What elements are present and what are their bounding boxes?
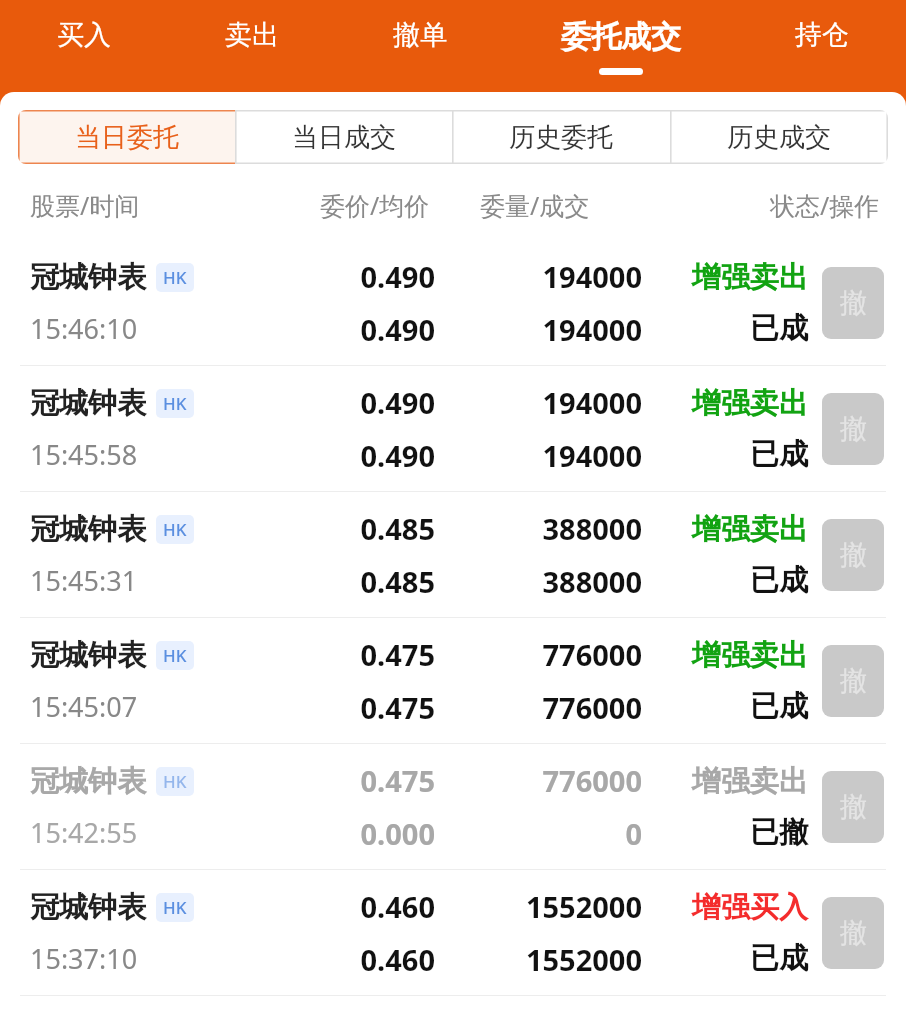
staticText: 增强卖出 [692,511,808,548]
button[interactable]: 冠城钟表 [0,492,906,617]
staticText: HK [163,266,187,289]
staticText: 194000 [542,383,642,422]
staticText: 776000 [542,761,642,800]
staticText: 0.475 [360,635,435,674]
staticText: 状态/操作 [770,188,880,222]
staticText: 冠城钟表 [30,259,146,296]
button[interactable]: 冠城钟表 [0,744,906,869]
staticText: 15:46:10 [30,310,138,347]
button[interactable]: 冠城钟表 [0,240,906,365]
staticText: 388000 [542,509,642,548]
staticText: 194000 [542,257,642,296]
staticText: 当日委托 [75,121,179,154]
button[interactable]: 撤单 [822,393,884,465]
staticText: 增强卖出 [692,763,808,800]
button[interactable]: 买入 [47,0,121,64]
staticText: 194000 [542,310,642,349]
staticText: 撤 [840,538,867,572]
staticText: 股票/时间 [30,188,140,222]
staticText: 已成 [750,436,808,473]
staticText: 冠城钟表 [30,385,146,422]
staticText: 0.000 [360,814,435,853]
staticText: 388000 [542,562,642,601]
staticText: 已成 [750,562,808,599]
staticText: 冠城钟表 [30,763,146,800]
staticText: 已撤 [750,814,808,851]
staticText: 委价/均价 [320,188,430,222]
button[interactable]: 撤单 [822,645,884,717]
staticText: 1552000 [525,887,642,926]
staticText: 776000 [542,635,642,674]
staticText: HK [163,896,187,919]
button[interactable]: 冠城钟表 [0,366,906,491]
button[interactable]: 历史成交 [670,110,888,164]
staticText: 冠城钟表 [30,889,146,926]
staticText: 776000 [542,688,642,727]
staticText: 194000 [542,436,642,475]
staticText: 撤 [840,916,867,950]
staticText: 0.490 [360,257,435,296]
staticText: 买入 [57,18,111,52]
staticText: HK [163,770,187,793]
button[interactable]: 撤单 [822,897,884,969]
staticText: 委托成交 [561,18,681,56]
staticText: 增强卖出 [692,637,808,674]
staticText: 当日成交 [292,121,396,154]
staticText: 增强卖出 [692,259,808,296]
staticText: 1552000 [525,940,642,979]
staticText: HK [163,518,187,541]
staticText: 增强买入 [692,889,808,926]
staticText: 持仓 [795,18,849,52]
staticText: 0.475 [360,761,435,800]
staticText: 0.490 [360,310,435,349]
staticText: 委量/成交 [480,188,590,222]
staticText: 历史成交 [727,121,831,154]
button[interactable]: 撤单 [822,771,884,843]
staticText: 15:37:10 [30,940,138,977]
staticText: 15:45:58 [30,436,138,473]
button[interactable]: 当日成交 [235,110,452,164]
staticText: 15:45:31 [30,562,138,599]
staticText: 冠城钟表 [30,511,146,548]
staticText: 15:42:55 [30,814,138,851]
staticText: 撤单 [393,18,447,52]
staticText: 0 [625,814,642,853]
staticText: 已成 [750,310,808,347]
button[interactable]: 历史委托 [452,110,670,164]
staticText: 已成 [750,688,808,725]
staticText: HK [163,392,187,415]
staticText: 冠城钟表 [30,637,146,674]
staticText: 0.475 [360,688,435,727]
staticText: 0.485 [360,509,435,548]
staticText: 撤 [840,664,867,698]
staticText: 0.460 [360,940,435,979]
button[interactable]: 撤单 [822,267,884,339]
button[interactable]: 当日委托 [18,110,235,164]
staticText: 0.490 [360,383,435,422]
staticText: 撤 [840,790,867,824]
staticText: HK [163,644,187,667]
button[interactable]: 撤单 [822,519,884,591]
staticText: 历史委托 [509,121,613,154]
staticText: 撤 [840,412,867,446]
staticText: 0.485 [360,562,435,601]
staticText: 0.490 [360,436,435,475]
staticText: 已成 [750,940,808,977]
staticText: 增强卖出 [692,385,808,422]
button[interactable]: 持仓 [785,0,859,64]
staticText: 0.460 [360,887,435,926]
staticText: 卖出 [225,18,279,52]
button[interactable]: 撤单 [383,0,457,64]
button[interactable]: 卖出 [215,0,289,64]
staticText: 15:45:07 [30,688,138,725]
button[interactable]: 冠城钟表 [0,618,906,743]
staticText: 撤 [840,286,867,320]
button[interactable]: 冠城钟表 [0,870,906,995]
button[interactable]: 委托成交 [551,0,691,75]
